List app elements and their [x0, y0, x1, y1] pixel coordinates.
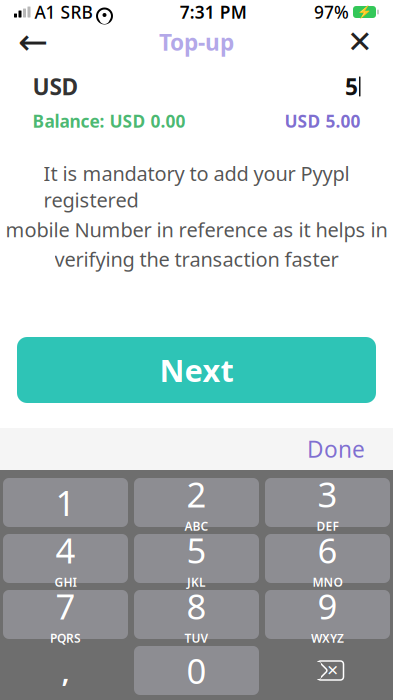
button[interactable]: Done [293, 426, 379, 472]
button[interactable]: 9 [265, 590, 390, 639]
staticText: 3 [317, 471, 337, 517]
staticText: , [61, 651, 69, 690]
staticText: 6 [317, 527, 337, 573]
staticText: ← [18, 22, 48, 62]
staticText: Next [159, 350, 233, 390]
staticText: JKL [187, 574, 206, 590]
button[interactable]: Comma [3, 646, 128, 695]
staticText: 0 [186, 647, 206, 693]
staticText: 9 [317, 583, 337, 629]
button[interactable]: 7 [3, 590, 128, 639]
button[interactable]: Back [10, 25, 56, 59]
staticText: 97% [314, 0, 349, 23]
staticText: mobile Number in reference as it helps i… [5, 216, 387, 243]
staticText: ⚡ [357, 5, 372, 19]
staticText: 2 [186, 471, 206, 517]
staticText: ✕ [326, 662, 338, 679]
button[interactable]: 3 [265, 478, 390, 527]
button[interactable]: 2 [134, 478, 259, 527]
button[interactable]: 0 [134, 646, 259, 695]
staticText: It is mandatory to add your Pyypl regist… [43, 160, 349, 213]
staticText: TUV [184, 630, 208, 646]
staticText: 5 [186, 527, 206, 573]
button[interactable]: Close [337, 25, 383, 59]
staticText: 4 [55, 527, 75, 573]
staticText: ABC [184, 518, 208, 534]
staticText: MNO [312, 574, 342, 590]
staticText: 7 [55, 583, 75, 629]
staticText: PQRS [50, 630, 81, 646]
staticText: 7:31 PM [180, 0, 247, 23]
staticText: DEF [316, 518, 338, 534]
button[interactable]: 1 [3, 478, 128, 527]
button[interactable]: 6 [265, 534, 390, 583]
button[interactable]: Next [17, 337, 376, 403]
button[interactable]: 8 [134, 590, 259, 639]
button[interactable]: Delete [265, 646, 390, 695]
button[interactable]: 5 [134, 534, 259, 583]
staticText: Top-up [159, 27, 234, 57]
staticText: Balance: USD 0.00 [32, 109, 185, 132]
staticText: Done [307, 434, 365, 464]
button[interactable]: 4 [3, 534, 128, 583]
staticText: GHI [54, 574, 76, 590]
staticText: A1 SRB [34, 0, 92, 23]
staticText: 8 [186, 583, 206, 629]
staticText: WXYZ [311, 630, 344, 646]
staticText: USD 5.00 [284, 109, 360, 132]
staticText: ✕ [347, 25, 373, 59]
staticText: verifying the transaction faster [54, 246, 338, 272]
staticText: 1 [55, 479, 75, 525]
staticText: 5 [345, 71, 358, 101]
staticText: USD [32, 71, 78, 101]
